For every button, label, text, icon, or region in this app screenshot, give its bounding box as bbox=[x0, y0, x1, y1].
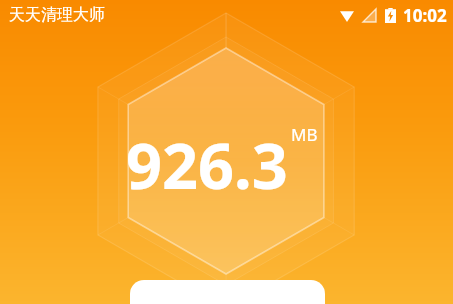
other: Signal bbox=[363, 9, 376, 22]
other: Battery charging bbox=[385, 8, 396, 23]
staticText: 926.3 bbox=[126, 122, 288, 208]
staticText: 10:02 bbox=[403, 4, 447, 27]
button[interactable]: 天天清理大师 bbox=[9, 5, 105, 25]
button[interactable] bbox=[130, 280, 325, 304]
staticText: MB bbox=[291, 123, 318, 146]
other: Download bbox=[340, 10, 354, 22]
